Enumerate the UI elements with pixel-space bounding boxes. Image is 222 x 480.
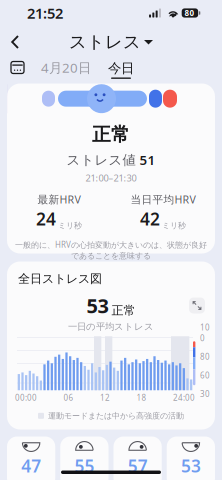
staticText: 4月20日	[41, 59, 91, 76]
button[interactable]: ストレス	[69, 27, 153, 57]
staticText: 一日の平均ストレス	[68, 321, 154, 332]
button[interactable]: 53	[167, 436, 215, 480]
button[interactable]: 拡大	[189, 297, 205, 313]
staticText: 正常	[92, 123, 130, 146]
staticText: 18	[136, 392, 146, 403]
staticText: 12	[100, 392, 110, 403]
staticText: 24	[36, 207, 56, 230]
staticText: ストレス	[69, 31, 141, 53]
staticText: ストレス値	[66, 152, 135, 168]
staticText: 30	[200, 389, 210, 399]
staticText: 42	[140, 207, 160, 230]
button[interactable]: 47	[7, 436, 55, 480]
staticText: 今日	[108, 60, 134, 76]
staticText: 51	[139, 151, 155, 169]
staticText: ミリ秒	[162, 221, 186, 230]
staticText: 正常	[111, 303, 135, 318]
staticText: であることを意味する	[71, 251, 151, 261]
button[interactable]: 戻る	[0, 28, 31, 55]
button[interactable]: 今日	[100, 56, 142, 79]
staticText: 57	[128, 454, 148, 477]
staticText: 21:52	[27, 3, 63, 23]
staticText: 運動モードまたは中から高強度の活動	[48, 411, 184, 421]
staticText: 00:00	[15, 392, 37, 403]
button[interactable]: 55	[60, 436, 108, 480]
staticText: 24:00	[173, 392, 195, 403]
staticText: 全日ストレス図	[18, 271, 102, 286]
staticText: 55	[74, 454, 94, 477]
staticText: ミリ秒	[58, 221, 82, 230]
staticText: 60	[200, 370, 210, 381]
button[interactable]: 57	[113, 436, 162, 480]
staticText: 一般的に、HRVの心拍変動が大きいのは、状態が良好	[15, 239, 207, 250]
staticText: 53	[86, 292, 108, 319]
staticText: 06	[63, 392, 73, 403]
staticText: 53	[181, 454, 201, 477]
staticText: 21:00–21:30	[85, 172, 136, 184]
button[interactable]: カレンダー	[3, 56, 32, 78]
staticText: 80	[184, 8, 194, 18]
staticText: 47	[21, 454, 41, 477]
staticText: 当日平均HRV	[130, 192, 195, 206]
staticText: 100	[200, 322, 210, 343]
staticText: 80	[200, 351, 210, 362]
staticText: 最新HRV	[37, 192, 80, 206]
button[interactable]: 4月20日	[32, 54, 100, 81]
